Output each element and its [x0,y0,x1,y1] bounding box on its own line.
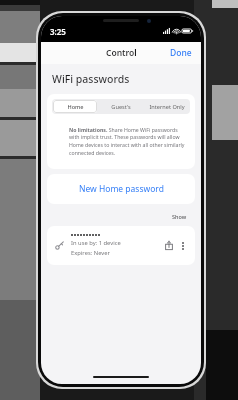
staticText: Home [67,103,84,111]
button[interactable]: Guest's [99,100,143,113]
staticText: In use by: 1 device [71,239,121,247]
button[interactable]: Internet Only [145,100,189,113]
staticText: Expires: Never [71,249,110,257]
staticText: New Home password [79,183,164,195]
staticText: Internet Only [149,103,185,111]
staticText: Guest's [111,103,131,111]
button[interactable]: Share password [162,238,176,253]
button[interactable]: New Home password [47,174,195,204]
staticText: No limitations. Share Home WiFi password… [69,126,185,157]
button[interactable]: Home [53,100,97,113]
other: Password key [55,241,64,250]
button[interactable]: Show [170,211,189,222]
staticText: WiFi passwords [52,72,130,86]
staticText: 3:25 [50,26,66,37]
button[interactable]: Password key [47,226,195,265]
button[interactable]: More options [179,239,187,253]
button[interactable]: Done [161,43,201,63]
staticText: Control [106,47,137,59]
